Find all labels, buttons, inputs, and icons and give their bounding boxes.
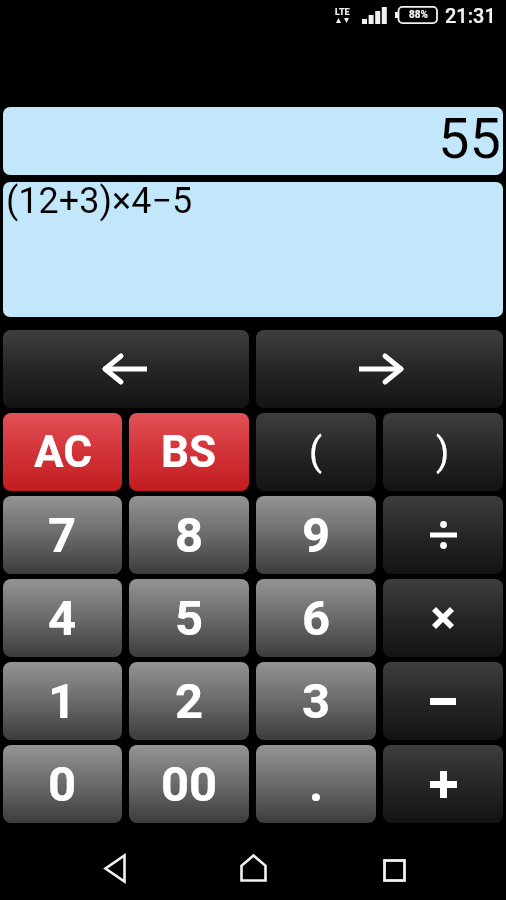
button[interactable]: BS [129,413,249,491]
staticText: 8 [175,507,204,564]
button[interactable]: 3 [256,662,376,740]
staticText: ( [309,430,323,475]
button[interactable]: 2 [129,662,249,740]
button[interactable]: . [256,745,376,823]
staticText: 9 [302,507,331,564]
staticText: 88% [409,9,428,21]
staticText: 5 [175,590,204,647]
button[interactable] [256,330,503,408]
button[interactable]: 5 [129,579,249,657]
staticText: 4 [48,590,77,647]
button[interactable]: AC [3,413,122,491]
button[interactable] [3,330,249,408]
button[interactable] [97,850,133,886]
staticText: BS [161,426,217,478]
button[interactable]: 00 [129,745,249,823]
button[interactable]: 1 [3,662,122,740]
button[interactable]: ( [256,413,376,491]
button[interactable]: 4 [3,579,122,657]
staticText: 7 [48,507,77,564]
staticText: 0 [48,756,77,813]
staticText: 21:31 [445,4,496,27]
button[interactable] [383,745,503,823]
staticText: ) [436,430,450,475]
button[interactable]: ) [383,413,503,491]
button[interactable] [383,579,503,657]
staticText: 00 [161,756,218,813]
button[interactable] [235,850,271,886]
button[interactable]: 0 [3,745,122,823]
staticText: (12+3)×4−5 [6,182,193,222]
staticText: . [309,756,324,813]
staticText: 3 [302,673,331,730]
button[interactable]: 7 [3,496,122,574]
staticText: 6 [302,590,331,647]
button[interactable] [383,662,503,740]
button[interactable]: 9 [256,496,376,574]
button[interactable]: 6 [256,579,376,657]
button[interactable]: 8 [129,496,249,574]
staticText: 55 [438,107,501,172]
staticText: LTE [335,7,350,18]
staticText: 2 [175,673,204,730]
staticText: AC [34,426,92,478]
button[interactable] [383,496,503,574]
button[interactable] [376,852,412,888]
staticText: 1 [48,673,77,730]
